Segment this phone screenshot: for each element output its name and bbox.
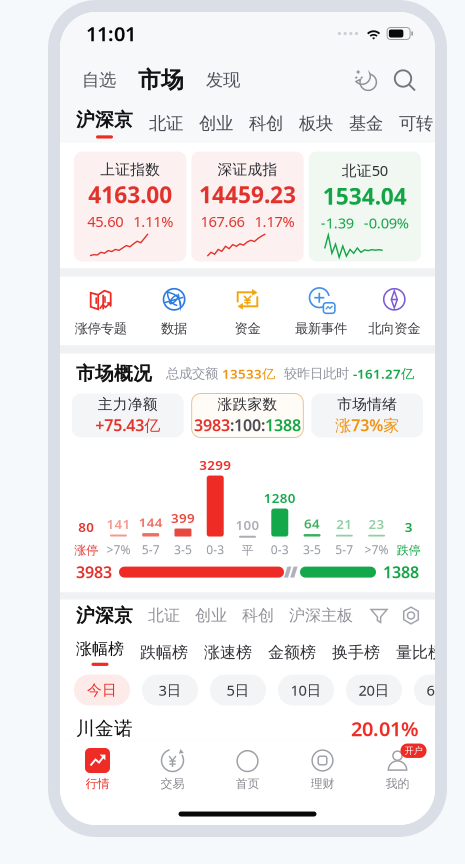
staticText: 资金: [234, 320, 260, 337]
button[interactable]: 创业: [195, 606, 227, 625]
button[interactable]: 可转: [399, 113, 433, 134]
button[interactable]: 开户: [360, 740, 435, 791]
button[interactable]: Search: [386, 61, 423, 98]
staticText: 市场概况: [76, 362, 152, 385]
staticText: 3299: [199, 456, 231, 474]
staticText: 1534.04: [323, 181, 407, 211]
button[interactable]: 深证成指: [191, 151, 304, 261]
button[interactable]: 5日: [210, 674, 266, 705]
button[interactable]: 金额榜: [268, 643, 332, 662]
staticText: 板块: [299, 113, 333, 134]
staticText: 涨幅榜: [76, 639, 124, 659]
staticText: 3日: [158, 680, 181, 700]
staticText: 深证成指: [217, 160, 277, 178]
staticText: 3: [405, 518, 413, 536]
button[interactable]: 市场: [124, 62, 198, 98]
staticText: 141: [106, 515, 130, 533]
button[interactable]: 换手榜: [332, 643, 396, 662]
staticText: 发现: [206, 69, 240, 91]
button[interactable]: 60日: [414, 674, 465, 705]
staticText: 金额榜: [268, 643, 316, 662]
staticText: 3-5: [303, 542, 321, 557]
button[interactable]: 自选: [74, 63, 124, 97]
button[interactable]: 上证指数: [74, 151, 186, 261]
staticText: 13533亿: [222, 365, 275, 382]
button[interactable]: 主力净额: [72, 393, 184, 437]
staticText: 沪深京: [76, 604, 133, 627]
button[interactable]: Filter: [361, 605, 397, 625]
button[interactable]: 基金: [349, 113, 399, 134]
staticText: 涨73%家: [335, 414, 399, 436]
staticText: 5日: [226, 680, 249, 700]
staticText: 5-7: [335, 542, 353, 557]
button[interactable]: 数据: [137, 274, 211, 348]
button[interactable]: 板块: [299, 113, 349, 134]
button[interactable]: Night mode: [346, 60, 386, 100]
staticText: 北向资金: [368, 320, 420, 337]
button[interactable]: 涨幅榜: [76, 639, 140, 666]
staticText: 我的: [385, 776, 409, 791]
button[interactable]: 跌幅榜: [140, 643, 204, 662]
button[interactable]: 涨停专题: [64, 274, 137, 348]
button[interactable]: 最新事件: [284, 274, 358, 348]
staticText: 川金诺: [76, 717, 133, 740]
button[interactable]: 北证: [149, 113, 199, 134]
staticText: 399: [171, 509, 195, 527]
staticText: 北证50: [342, 160, 388, 180]
staticText: 60日: [426, 680, 457, 700]
staticText: 14459.23: [199, 179, 296, 210]
button[interactable]: 涨速榜: [204, 643, 268, 662]
staticText: :100:: [230, 414, 265, 436]
staticText: 交易: [160, 776, 184, 791]
button[interactable]: 北证50: [309, 151, 421, 261]
staticText: 涨跌家数: [217, 395, 277, 413]
staticText: 较昨日此时: [284, 365, 349, 382]
button[interactable]: 量比榜: [396, 643, 444, 662]
staticText: 5-7: [142, 542, 160, 557]
button[interactable]: 科创: [242, 606, 274, 625]
staticText: 量比榜: [396, 643, 444, 662]
button[interactable]: 沪深主板: [289, 606, 353, 625]
staticText: 3983: [194, 414, 230, 436]
button[interactable]: 市场情绪: [311, 393, 423, 437]
button[interactable]: 行情: [60, 740, 135, 791]
button[interactable]: 发现: [198, 63, 248, 97]
button[interactable]: 资金: [211, 274, 284, 348]
staticText: 4163.00: [88, 179, 172, 210]
button[interactable]: 20日: [346, 674, 402, 705]
staticText: 1388: [383, 561, 419, 583]
button[interactable]: 创业: [199, 113, 249, 134]
staticText: 0-3: [271, 542, 289, 557]
staticText: 上证指数: [100, 160, 160, 178]
button[interactable]: 沪深京: [76, 604, 133, 627]
staticText: 市场: [138, 66, 184, 94]
button[interactable]: 今日: [74, 674, 130, 705]
staticText: 主力净额: [98, 395, 158, 413]
staticText: 100: [235, 516, 259, 534]
button[interactable]: 科创: [249, 113, 299, 134]
staticText: 科创: [249, 113, 283, 134]
staticText: 科创: [242, 606, 274, 625]
staticText: 20日: [358, 680, 389, 700]
staticText: 144: [139, 513, 163, 531]
staticText: 沪深京: [76, 108, 133, 131]
button[interactable]: 10日: [278, 674, 334, 705]
staticText: >7%: [365, 542, 389, 557]
staticText: 23: [369, 515, 385, 533]
button[interactable]: 首页: [210, 740, 285, 791]
staticText: 80: [78, 518, 94, 536]
button[interactable]: 交易: [135, 740, 210, 791]
button[interactable]: 理财: [285, 740, 360, 791]
staticText: 换手榜: [332, 643, 380, 662]
button[interactable]: 涨跌家数: [192, 393, 303, 437]
button[interactable]: 沪深京: [76, 108, 149, 138]
staticText: 45.60: [87, 212, 123, 231]
staticText: 1.11%: [133, 212, 173, 231]
staticText: 今日: [87, 681, 117, 699]
button[interactable]: 北向资金: [358, 274, 431, 348]
staticText: 沪深主板: [289, 606, 353, 625]
button[interactable]: 北证: [148, 606, 180, 625]
staticText: 1.17%: [254, 212, 294, 231]
button[interactable]: 3日: [142, 674, 198, 705]
button[interactable]: Settings: [397, 605, 421, 625]
